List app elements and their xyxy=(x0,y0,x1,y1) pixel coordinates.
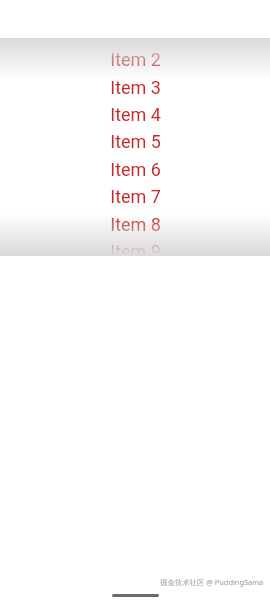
button[interactable]: Item 9 xyxy=(0,238,270,265)
staticText: Item 7 xyxy=(110,186,161,207)
button[interactable]: Item 3 xyxy=(0,74,270,101)
other: Home gesture bar xyxy=(112,594,159,597)
button[interactable]: Item 4 xyxy=(0,101,270,128)
staticText: Item 8 xyxy=(110,214,161,235)
button[interactable]: Item 2 xyxy=(0,46,270,73)
staticText: Item 9 xyxy=(110,241,161,262)
button[interactable]: Item 7 xyxy=(0,183,270,210)
button[interactable]: Item 6 xyxy=(0,156,270,183)
staticText: Item 4 xyxy=(110,104,161,125)
button[interactable]: Item 5 xyxy=(0,128,270,155)
staticText: Item 3 xyxy=(110,77,161,98)
staticText: 掘金技术社区 @ PuddingSama xyxy=(160,577,264,587)
staticText: Item 5 xyxy=(110,131,161,152)
staticText: Item 2 xyxy=(110,49,161,70)
button[interactable]: Item 8 xyxy=(0,211,270,238)
staticText: Item 6 xyxy=(110,159,161,180)
